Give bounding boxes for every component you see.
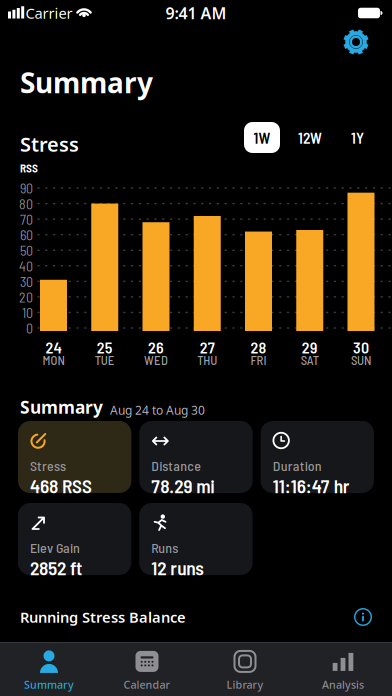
staticText: 2852 ft	[30, 556, 82, 579]
staticText: 24	[45, 337, 61, 357]
staticText: 20	[19, 288, 33, 305]
staticText: Running Stress Balance	[20, 607, 186, 627]
button[interactable]: Analysis	[294, 644, 392, 696]
staticText: 30	[353, 337, 369, 357]
staticText: 30	[20, 273, 33, 290]
button[interactable]: Distance	[139, 429, 253, 501]
staticText: 80	[19, 195, 33, 212]
button[interactable]: 1Y	[338, 121, 376, 153]
staticText: Stress	[30, 457, 66, 474]
staticText: 50	[20, 242, 33, 259]
staticText: SUN	[351, 352, 371, 368]
staticText: 10	[22, 304, 33, 321]
staticText: Summary	[20, 395, 103, 418]
staticText: Analysis	[322, 677, 364, 692]
staticText: Aug 24 to Aug 30	[110, 402, 205, 418]
button[interactable]: Stress	[18, 429, 131, 501]
button[interactable]: Settings	[339, 25, 373, 59]
staticText: 29	[302, 337, 318, 357]
staticText: FRI	[250, 352, 266, 368]
staticText: 78.29 mi	[151, 474, 215, 497]
staticText: 11:16:47 hr	[273, 474, 350, 497]
staticText: Summary	[20, 64, 153, 101]
staticText: Distance	[151, 457, 201, 474]
staticText: RSS	[20, 161, 38, 175]
staticText: WED	[144, 352, 168, 368]
staticText: Library	[226, 677, 263, 692]
staticText: SAT	[301, 352, 319, 368]
button[interactable]: Summary	[0, 644, 98, 696]
staticText: Elev Gain	[30, 539, 80, 556]
staticText: Carrier	[25, 3, 72, 23]
staticText: 28	[250, 337, 266, 357]
staticText: MON	[42, 352, 64, 368]
button[interactable]: Info	[351, 605, 375, 629]
staticText: 70	[20, 211, 33, 227]
button[interactable]: Runs	[139, 511, 253, 583]
staticText: Calendar	[123, 677, 170, 692]
staticText: Summary	[24, 677, 74, 692]
staticText: 40	[19, 257, 33, 274]
button[interactable]: 12W	[287, 121, 333, 153]
staticText: 25	[97, 337, 113, 357]
staticText: Stress	[20, 131, 79, 157]
staticText: 90	[20, 180, 33, 196]
staticText: 1Y	[351, 128, 364, 147]
staticText: THU	[197, 352, 217, 368]
button[interactable]: Library	[196, 644, 294, 696]
staticText: 0	[26, 320, 33, 336]
staticText: 1W	[253, 128, 270, 147]
button[interactable]: 1W	[244, 122, 280, 153]
staticText: 468 RSS	[30, 474, 92, 497]
staticText: 26	[148, 337, 164, 357]
button[interactable]: Calendar	[98, 644, 196, 696]
staticText: 9:41 AM	[165, 2, 226, 24]
staticText: TUE	[95, 352, 115, 368]
button[interactable]: Elev Gain	[18, 511, 131, 583]
staticText: Duration	[273, 457, 322, 474]
staticText: 60	[20, 226, 33, 243]
staticText: 12W	[298, 128, 322, 147]
staticText: Runs	[151, 539, 178, 556]
button[interactable]: Duration	[261, 429, 374, 501]
staticText: 27	[200, 337, 215, 357]
staticText: 12 runs	[151, 556, 204, 579]
